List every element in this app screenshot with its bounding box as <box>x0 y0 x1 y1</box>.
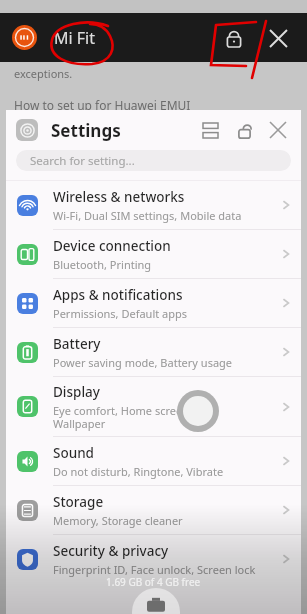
staticText: Security & privacy <box>53 542 169 560</box>
button[interactable]: Close <box>261 21 295 55</box>
staticText: Bluetooth, Printing <box>53 257 152 272</box>
button[interactable]: Storage <box>6 486 301 534</box>
staticText: Wireless & networks <box>53 188 185 206</box>
staticText: Device connection <box>53 237 171 255</box>
staticText: Display <box>53 383 100 401</box>
button[interactable]: Unlock <box>227 113 261 147</box>
button[interactable]: Display <box>6 377 301 436</box>
staticText: exceptions. <box>14 66 73 81</box>
staticText: Storage <box>53 493 104 511</box>
staticText: 1.69 GB of 4 GB free <box>106 575 201 589</box>
button[interactable]: Search for setting... <box>16 150 291 171</box>
button[interactable]: Security & privacy <box>6 535 301 583</box>
staticText: Wi-Fi, Dual SIM settings, Mobile data <box>53 208 242 223</box>
button[interactable]: Split screen <box>193 113 227 147</box>
staticText: Settings <box>51 119 121 142</box>
staticText: Apps & notifications <box>53 286 183 304</box>
staticText: Memory, Storage cleaner <box>53 513 183 528</box>
button[interactable]: Close settings <box>261 113 295 147</box>
staticText: Permissions, Default apps <box>53 306 188 321</box>
staticText: Search for setting... <box>30 153 135 169</box>
staticText: Mi Fit <box>54 27 96 49</box>
button[interactable]: Apps <box>132 588 180 614</box>
button[interactable]: Apps & notifications <box>6 279 301 327</box>
button[interactable]: Device connection <box>6 230 301 278</box>
button[interactable]: Battery <box>6 328 301 376</box>
button[interactable]: Lock <box>217 21 251 55</box>
staticText: Fingerprint ID, Face unlock, Screen lock <box>53 562 256 577</box>
staticText: Sound <box>53 444 94 462</box>
staticText: Power saving mode, Battery usage <box>53 355 233 370</box>
button[interactable]: Wireless & networks <box>6 181 301 229</box>
staticText: Battery <box>53 335 101 353</box>
staticText: How to set up for Huawei EMUI <box>14 97 191 113</box>
staticText: Do not disturb, Ringtone, Vibrate <box>53 464 224 479</box>
button[interactable]: Sound <box>6 437 301 485</box>
staticText: Eye comfort, Home screen style, Wallpape… <box>53 403 219 431</box>
